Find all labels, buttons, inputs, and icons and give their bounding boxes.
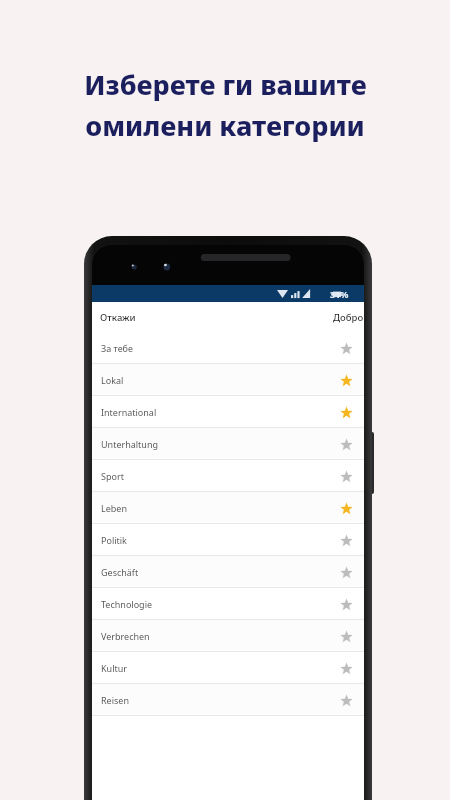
staticText: Kultur xyxy=(101,662,127,674)
button[interactable]: Add Verbrechen to favourites xyxy=(336,626,356,646)
staticText: Sport xyxy=(101,470,124,482)
staticText: International xyxy=(101,406,157,418)
button[interactable]: Add Unterhaltung to favourites xyxy=(336,434,356,454)
staticText: Добро xyxy=(333,311,364,324)
button[interactable]: Add Politik to favourites xyxy=(336,530,356,550)
button[interactable]: Geschäft xyxy=(92,556,364,588)
staticText: Изберете ги вашите xyxy=(84,66,367,103)
button[interactable]: Add Technologie to favourites xyxy=(336,594,356,614)
button[interactable]: Add Reisen to favourites xyxy=(336,690,356,710)
button[interactable]: Add Kultur to favourites xyxy=(336,658,356,678)
button[interactable]: За тебе xyxy=(92,332,364,364)
staticText: Откажи xyxy=(100,311,136,324)
staticText: Unterhaltung xyxy=(101,438,159,450)
staticText: Lokal xyxy=(101,374,124,386)
button[interactable]: Remove Leben from favourites xyxy=(336,498,356,518)
staticText: Leben xyxy=(101,502,127,514)
button[interactable]: Add За тебе to favourites xyxy=(336,338,356,358)
staticText: 31% xyxy=(330,288,349,300)
button[interactable]: Откажи xyxy=(92,302,146,332)
staticText: Reisen xyxy=(101,694,129,706)
button[interactable]: Leben xyxy=(92,492,364,524)
button[interactable]: Technologie xyxy=(92,588,364,620)
button[interactable]: Verbrechen xyxy=(92,620,364,652)
button[interactable]: Lokal xyxy=(92,364,364,396)
button[interactable]: Remove International from favourites xyxy=(336,402,356,422)
staticText: Technologie xyxy=(101,598,153,610)
staticText: За тебе xyxy=(101,342,133,354)
staticText: Politik xyxy=(101,534,127,546)
button[interactable]: International xyxy=(92,396,364,428)
button[interactable]: Add Geschäft to favourites xyxy=(336,562,356,582)
button[interactable]: Reisen xyxy=(92,684,364,716)
button[interactable]: Remove Lokal from favourites xyxy=(336,370,356,390)
button[interactable]: Politik xyxy=(92,524,364,556)
staticText: Geschäft xyxy=(101,566,139,578)
button[interactable]: Добро xyxy=(333,302,364,332)
staticText: Verbrechen xyxy=(101,630,150,642)
button[interactable]: Unterhaltung xyxy=(92,428,364,460)
staticText: омилени категории xyxy=(85,107,365,144)
button[interactable]: Sport xyxy=(92,460,364,492)
button[interactable]: Add Sport to favourites xyxy=(336,466,356,486)
button[interactable]: Kultur xyxy=(92,652,364,684)
